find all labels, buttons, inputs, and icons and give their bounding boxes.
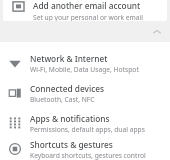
button[interactable]: Shortcuts & gestures: [0, 138, 170, 160]
button[interactable]: Collapse suggestions: [150, 25, 164, 39]
button[interactable]: Connected devices: [0, 78, 170, 108]
staticText: Add another email account: [33, 0, 141, 11]
button[interactable]: Network & Internet: [0, 48, 170, 78]
button[interactable]: Add another email account: [3, 0, 167, 21]
staticText: Bluetooth, Cast, NFC: [30, 95, 95, 104]
staticText: Apps & notifications: [30, 113, 110, 124]
staticText: Network & Internet: [30, 53, 108, 64]
button[interactable]: Apps & notifications: [0, 108, 170, 138]
staticText: Shortcuts & gestures: [30, 139, 113, 150]
staticText: Connected devices: [30, 83, 105, 94]
staticText: Set up your personal or work email: [33, 13, 144, 21]
staticText: Permissions, default apps, dual apps: [30, 125, 145, 134]
staticText: Wi-Fi, Mobile, Data Usage, Hotspot: [30, 65, 139, 74]
staticText: Keyboard shortcuts, gestures control: [30, 151, 146, 160]
